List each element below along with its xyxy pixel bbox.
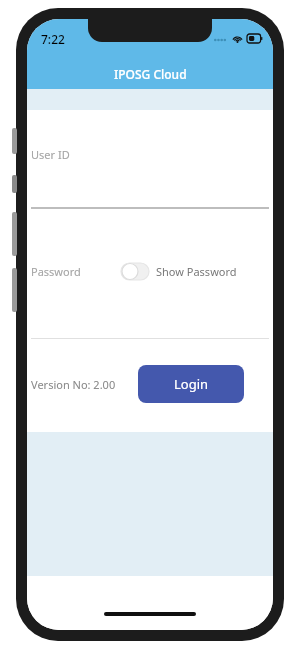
staticText: Login (174, 375, 209, 393)
staticText: Show Password (156, 264, 237, 279)
button[interactable]: Login (138, 365, 244, 403)
staticText: Version No: 2.00 (31, 377, 116, 392)
staticText: Password (31, 264, 81, 279)
other: Show Password toggle (121, 263, 149, 280)
staticText: IPOSG Cloud (114, 66, 187, 82)
button[interactable]: Show Password toggle (121, 263, 237, 280)
button[interactable]: Password (31, 264, 81, 279)
staticText: 7:22 (41, 31, 65, 47)
staticText: User ID (31, 147, 70, 162)
button[interactable]: User ID (27, 110, 273, 198)
